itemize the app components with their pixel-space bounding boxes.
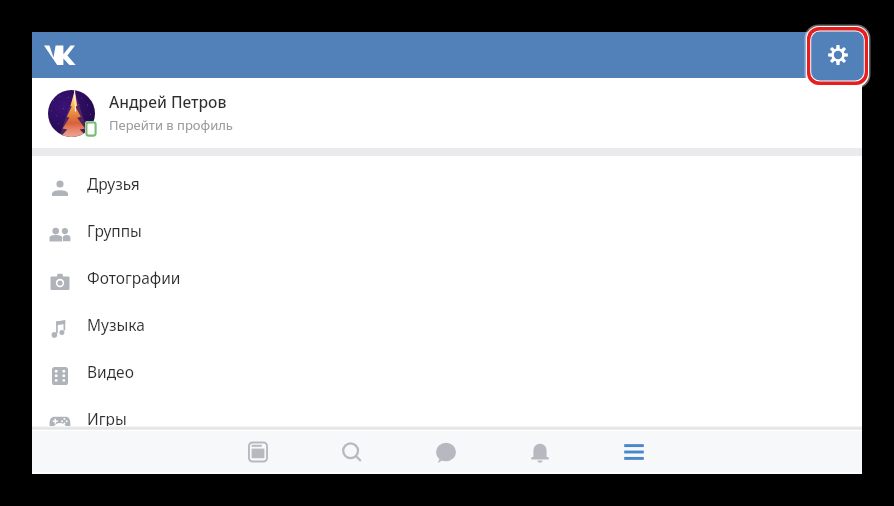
button[interactable]: Игры bbox=[32, 395, 862, 442]
button[interactable]: Messages bbox=[399, 431, 493, 474]
button[interactable]: Видео bbox=[32, 348, 862, 395]
button[interactable]: Музыка bbox=[32, 301, 862, 348]
staticText: Друзья bbox=[87, 173, 140, 194]
button[interactable]: Settings bbox=[804, 24, 871, 89]
button[interactable]: Фотографии bbox=[32, 254, 862, 301]
staticText: Игры bbox=[87, 408, 127, 429]
staticText: Группы bbox=[87, 220, 142, 241]
button[interactable]: News bbox=[211, 431, 305, 474]
button[interactable]: Settings bbox=[810, 32, 858, 78]
button[interactable]: Друзья bbox=[32, 160, 862, 207]
button[interactable]: Группы bbox=[32, 207, 862, 254]
button[interactable]: Notifications bbox=[493, 431, 587, 474]
staticText: Андрей Петров bbox=[109, 91, 227, 112]
button[interactable]: Menu bbox=[587, 431, 681, 474]
button[interactable]: Андрей Петров bbox=[32, 78, 862, 148]
staticText: Видео bbox=[87, 361, 134, 382]
staticText: Перейти в профиль bbox=[109, 116, 233, 134]
staticText: Музыка bbox=[87, 314, 145, 335]
staticText: Фотографии bbox=[87, 267, 181, 288]
button[interactable]: Search bbox=[305, 431, 399, 474]
